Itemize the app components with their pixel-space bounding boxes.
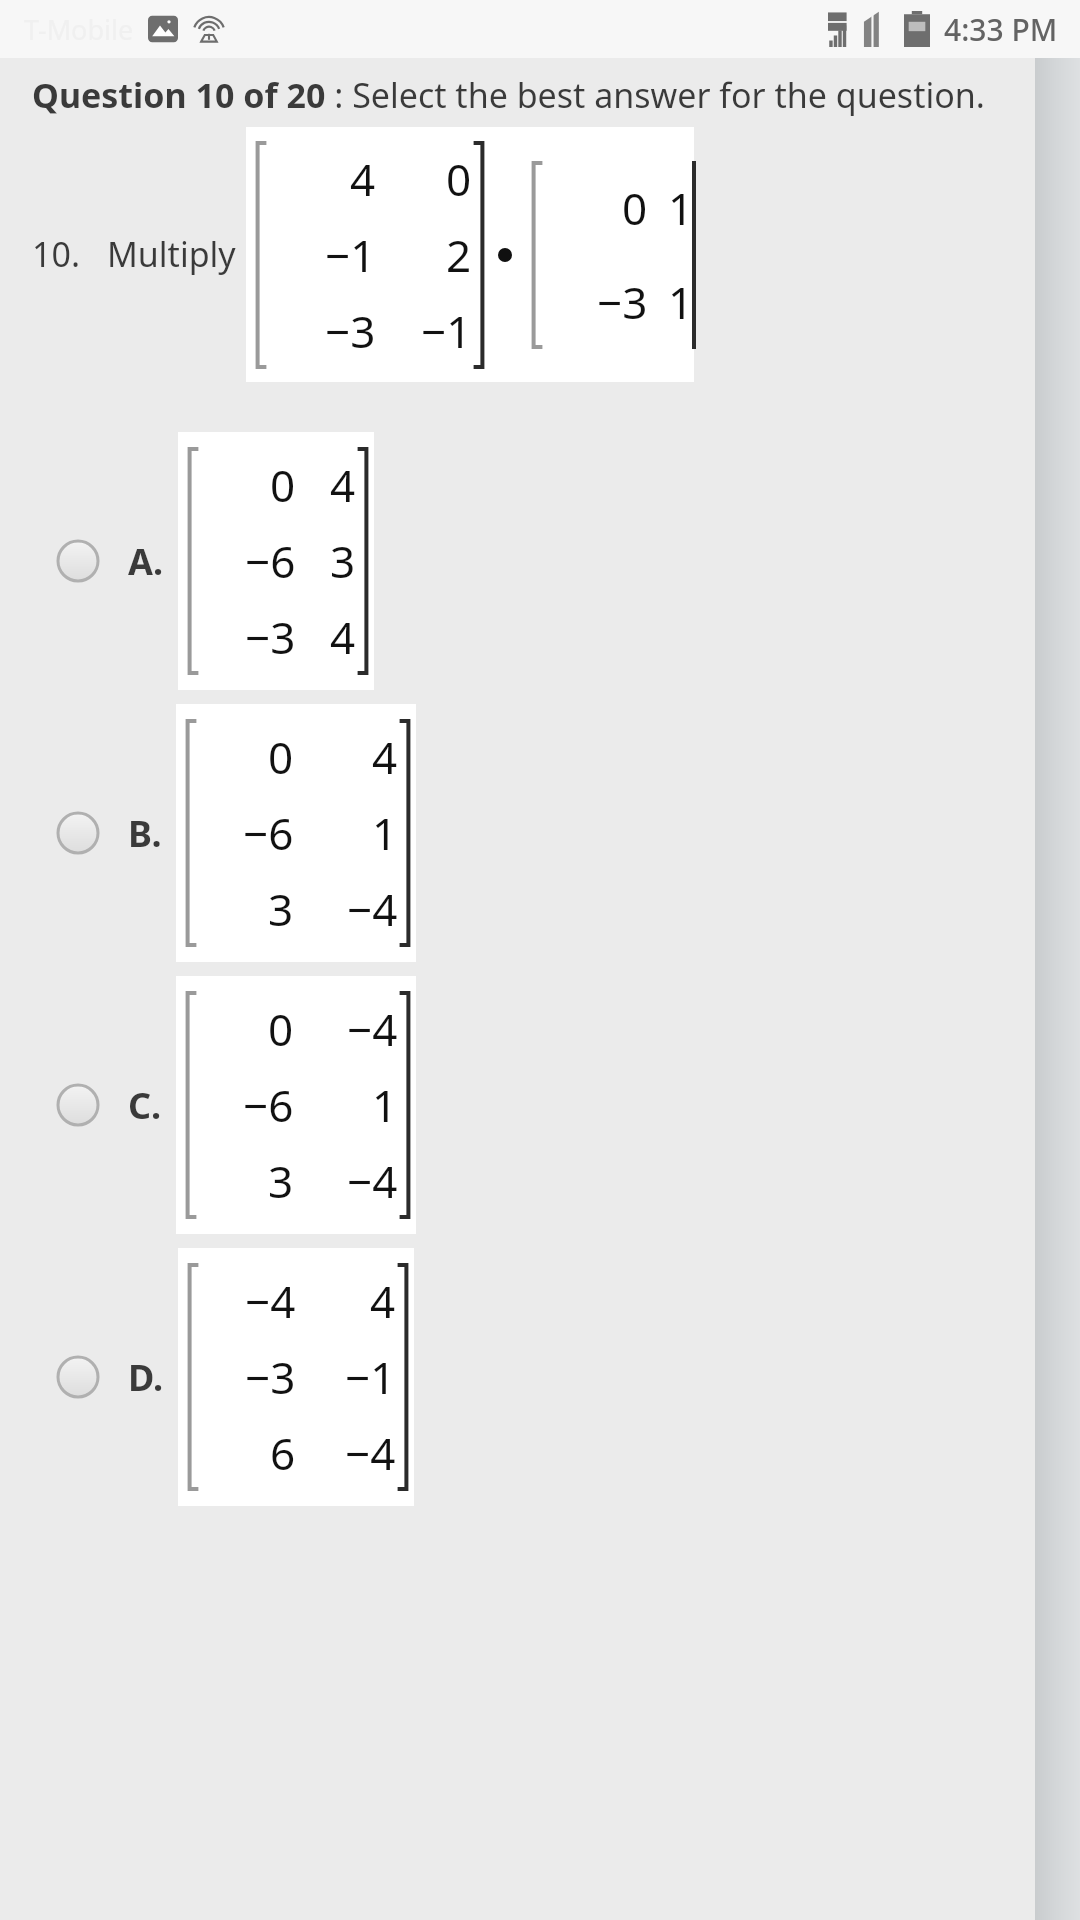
- staticText: Multiply: [107, 231, 236, 277]
- staticText: C.: [128, 1081, 162, 1130]
- button[interactable]: Select option C.: [0, 976, 1080, 1234]
- staticText: −1: [345, 1347, 396, 1407]
- staticText: 3: [330, 531, 356, 591]
- staticText: 1: [668, 178, 694, 238]
- staticText: B.: [128, 809, 162, 858]
- staticText: −4: [347, 999, 398, 1059]
- button[interactable]: Select option D.: [0, 1248, 1080, 1506]
- staticText: −1: [421, 301, 472, 361]
- staticText: −3: [245, 1347, 296, 1407]
- staticText: −4: [347, 879, 398, 939]
- staticText: 4:33 PM: [944, 9, 1058, 50]
- staticText: −4: [245, 1271, 296, 1331]
- staticText: 4: [330, 607, 356, 667]
- staticText: −3: [597, 272, 648, 332]
- staticText: 0: [270, 455, 296, 515]
- other: Select option A.: [56, 539, 100, 583]
- staticText: 0: [446, 149, 472, 209]
- staticText: 4: [372, 727, 398, 787]
- staticText: Question 10 of 20 : Select the best answ…: [32, 72, 985, 118]
- staticText: 6: [270, 1423, 296, 1483]
- other: Select option D.: [56, 1355, 100, 1399]
- staticText: −4: [347, 1151, 398, 1211]
- staticText: 0: [622, 178, 648, 238]
- staticText: 1: [372, 803, 398, 863]
- staticText: 3: [268, 1151, 294, 1211]
- staticText: −6: [243, 803, 294, 863]
- button[interactable]: Select option B.: [0, 704, 1080, 962]
- staticText: 10.: [32, 231, 81, 277]
- staticText: 1: [668, 272, 694, 332]
- staticText: 4: [350, 149, 376, 209]
- button[interactable]: Select option A.: [0, 432, 1080, 690]
- staticText: 0: [268, 727, 294, 787]
- staticText: 3: [268, 879, 294, 939]
- staticText: 0: [268, 999, 294, 1059]
- staticText: −6: [243, 1075, 294, 1135]
- staticText: D.: [128, 1353, 164, 1402]
- staticText: −3: [325, 301, 376, 361]
- staticText: 1: [372, 1075, 398, 1135]
- other: Select option C.: [56, 1083, 100, 1127]
- staticText: −6: [245, 531, 296, 591]
- staticText: A.: [128, 537, 164, 586]
- staticText: −1: [325, 225, 376, 285]
- staticText: −4: [345, 1423, 396, 1483]
- staticText: 4: [370, 1271, 396, 1331]
- staticText: 2: [446, 225, 472, 285]
- other: Select option B.: [56, 811, 100, 855]
- staticText: 4: [330, 455, 356, 515]
- staticText: −3: [245, 607, 296, 667]
